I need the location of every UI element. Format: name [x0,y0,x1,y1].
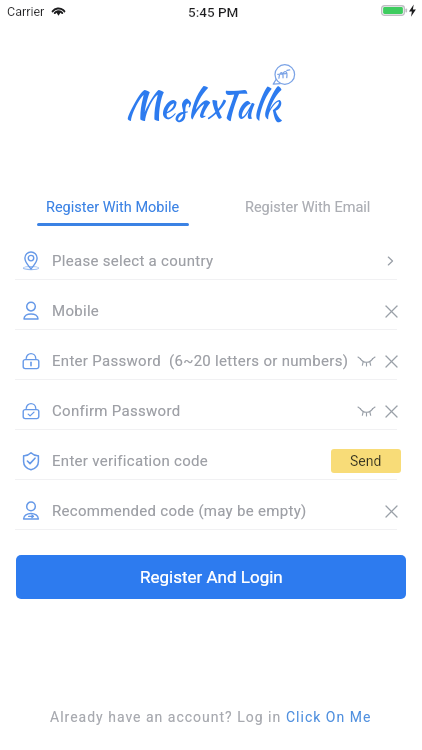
button[interactable]: Click On Me [286,709,372,725]
staticText: Recommended code (may be empty) [52,502,382,520]
staticText: Click On Me [286,709,372,725]
staticText: Already have an account? Log in [50,709,282,725]
staticText: Carrier [7,4,45,19]
staticText: Enter Password (6~20 letters or numbers) [52,352,358,370]
staticText: Confirm Password [52,402,358,420]
button[interactable]: Select country [380,251,400,271]
staticText: 5:45 PM [188,4,239,20]
button[interactable]: Register With Mobile [16,188,209,233]
button[interactable] [15,379,397,429]
button[interactable] [15,329,397,379]
button[interactable]: Show password [358,352,375,370]
button[interactable]: Register With Email [209,188,406,233]
button[interactable]: Register And Login [16,555,406,599]
staticText: Register With Email [245,199,371,216]
button[interactable]: Show password [358,402,375,420]
staticText: Register And Login [140,567,283,587]
button[interactable] [15,279,397,329]
button[interactable] [15,429,397,479]
button[interactable]: Clear [382,502,400,520]
staticText: Mobile [52,302,382,320]
button[interactable]: Clear [382,302,400,320]
button[interactable]: Clear [382,352,400,370]
staticText: Send [350,453,382,469]
staticText: Please select a country [52,252,380,270]
button[interactable]: Send [331,449,401,473]
button[interactable]: Clear [382,402,400,420]
staticText: Register With Mobile [46,199,180,216]
staticText: MeshxTalk [126,78,281,132]
staticText: Enter verification code [52,452,330,470]
button[interactable] [15,229,397,279]
button[interactable] [15,479,397,529]
